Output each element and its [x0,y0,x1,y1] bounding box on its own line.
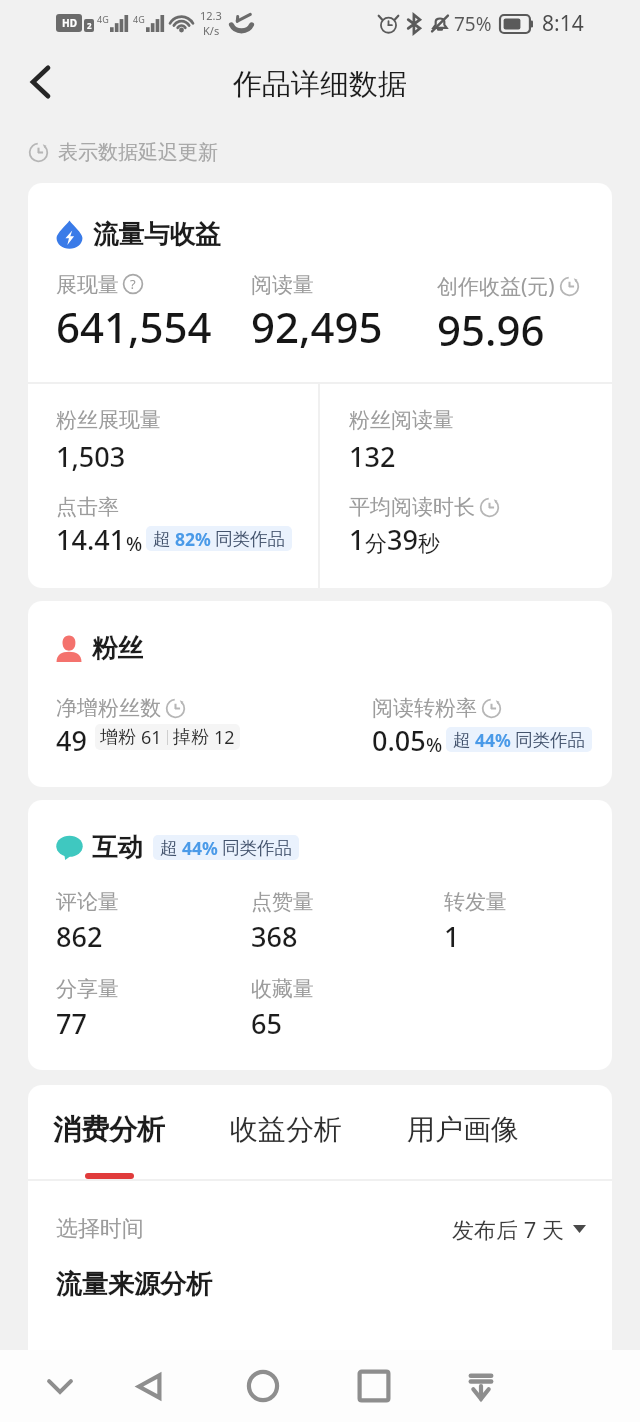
staticText: 14.41 [56,521,126,558]
staticText: 展现量 [56,272,119,298]
staticText: 表示数据延迟更新 [58,140,218,165]
staticText: 互动 [92,831,143,863]
staticText: 0.05 [372,722,426,759]
staticText: 发布后 7 天 [452,1214,565,1244]
staticText: 超 [453,729,471,751]
button[interactable]: Scroll down [429,1350,533,1422]
staticText: 同类作品 [215,528,285,550]
staticText: 641,554 [56,298,212,355]
button[interactable]: Home [207,1350,318,1422]
staticText: 862 [56,918,103,955]
staticText: 阅读量 [251,272,314,298]
staticText: % [126,531,143,557]
button[interactable]: Back [106,1350,193,1422]
staticText: 超 [160,837,178,859]
button[interactable]: 发布后 7 天 [452,1214,586,1244]
button[interactable]: 互动 [56,831,299,863]
staticText: 秒 [418,530,440,558]
staticText: 分享量 [56,976,119,1002]
staticText: 增粉 [100,726,136,749]
staticText: 77 [56,1005,87,1042]
staticText: 转发量 [444,889,507,915]
staticText: 75% [454,11,492,37]
staticText: 12 [214,725,235,750]
staticText: 8:14 [542,9,584,38]
staticText: 39 [387,521,418,558]
staticText: 选择时间 [56,1215,144,1243]
staticText: % [426,732,443,758]
button[interactable]: 粉丝 [56,632,143,664]
staticText: 阅读转粉率 [372,695,477,721]
staticText: 4G [97,13,109,25]
staticText: 创作收益(元) [437,272,555,301]
staticText: 4G [133,13,145,25]
staticText: 收藏量 [251,976,314,1002]
staticText: 12.3 [200,8,222,23]
staticText: 用户画像 [407,1112,519,1147]
button[interactable]: 收益分析 [230,1085,342,1179]
button[interactable]: 流量与收益 [56,218,221,250]
staticText: 95.96 [437,301,545,358]
staticText: 92,495 [251,298,383,355]
staticText: K/s [203,23,220,38]
staticText: 49 [56,722,87,759]
staticText: 65 [251,1005,282,1042]
staticText: 超 [153,528,171,550]
staticText: 评论量 [56,889,119,915]
staticText: 点击率 [56,494,119,520]
staticText: 粉丝展现量 [56,407,161,433]
staticText: 收益分析 [230,1112,342,1147]
staticText: 净增粉丝数 [56,695,161,721]
button[interactable]: Collapse [14,1350,106,1422]
staticText: 44% [475,728,511,752]
staticText: 1 [349,521,365,558]
button[interactable]: Back [0,46,74,122]
button[interactable]: Recents [318,1350,429,1422]
staticText: 点赞量 [251,889,314,915]
staticText: 132 [349,438,396,475]
staticText: 消费分析 [53,1112,165,1147]
staticText: HD [62,16,77,30]
staticText: 流量与收益 [93,218,221,250]
staticText: 作品详细数据 [233,66,407,103]
staticText: 1,503 [56,438,126,475]
staticText: 粉丝 [92,632,143,664]
staticText: 掉粉 [173,726,209,749]
staticText: 同类作品 [515,729,585,751]
button[interactable]: 用户画像 [407,1085,519,1179]
staticText: 粉丝阅读量 [349,407,454,433]
staticText: 分 [365,530,387,558]
staticText: ? [130,275,136,293]
staticText: 44% [182,836,218,860]
staticText: 同类作品 [222,837,292,859]
staticText: 1 [444,918,460,955]
staticText: 368 [251,918,298,955]
staticText: 2 [87,20,92,31]
button[interactable]: Help [123,274,143,294]
staticText: 流量来源分析 [56,1268,212,1301]
staticText: 61 [141,725,162,750]
staticText: 82% [175,527,211,551]
staticText: 平均阅读时长 [349,494,475,520]
button[interactable]: 消费分析 [53,1085,165,1179]
